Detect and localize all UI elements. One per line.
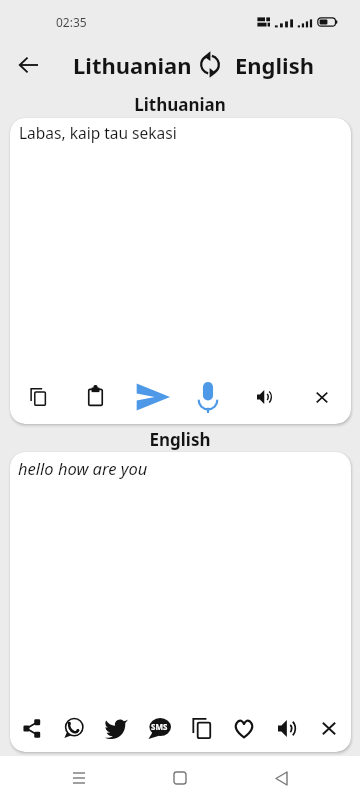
staticText: Labas, kaip tau sekasi <box>19 122 177 143</box>
button[interactable]: Favorite <box>227 711 261 745</box>
button[interactable]: Close <box>312 711 346 745</box>
button[interactable]: Recents <box>57 756 101 800</box>
button[interactable]: Copy <box>184 711 218 745</box>
staticText: English <box>0 428 360 451</box>
button[interactable]: Lithuanian <box>73 50 192 80</box>
staticText: 02:35 <box>56 14 87 30</box>
staticText: hello how are you <box>18 457 148 479</box>
button[interactable]: WhatsApp <box>56 711 90 745</box>
button[interactable]: SMS <box>142 711 176 745</box>
staticText: SMS <box>151 721 168 732</box>
button[interactable]: Back <box>259 756 303 800</box>
button[interactable]: Share <box>15 711 49 745</box>
button[interactable]: Paste <box>78 378 112 412</box>
button[interactable]: Twitter <box>99 710 133 744</box>
button[interactable]: Copy <box>21 380 55 414</box>
button[interactable]: English <box>235 50 315 80</box>
button[interactable]: Listen <box>269 711 303 745</box>
button[interactable]: Home <box>158 756 202 800</box>
button[interactable]: Translate <box>136 380 170 414</box>
button[interactable]: Swap languages <box>193 45 227 83</box>
button[interactable]: Speak <box>191 380 225 414</box>
button[interactable]: Back <box>6 43 50 87</box>
button[interactable]: Clear <box>305 380 339 414</box>
staticText: Lithuanian <box>0 93 360 116</box>
button[interactable]: Listen <box>247 380 281 414</box>
